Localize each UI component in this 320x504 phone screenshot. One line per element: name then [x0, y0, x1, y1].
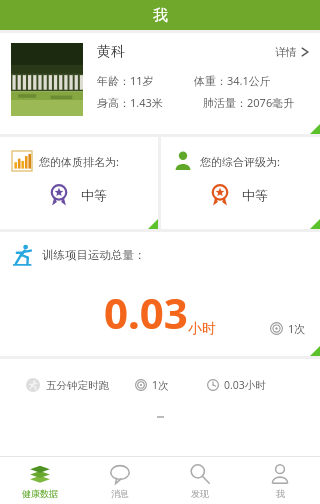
button[interactable]: 训练项目运动总量： [0, 232, 320, 356]
staticText: 发现 [191, 488, 209, 499]
button[interactable]: 健康数据 [0, 457, 80, 504]
staticText: 1次 [152, 378, 169, 392]
staticText: 1次 [288, 321, 306, 336]
button[interactable]: 黄科 [0, 33, 320, 134]
button[interactable]: 发现 [160, 457, 240, 504]
staticText: 肺活量：2076毫升 [203, 95, 295, 110]
button[interactable]: 您的体质排名为: [0, 137, 158, 229]
button[interactable]: 我 [240, 457, 320, 504]
button[interactable]: 详情 [275, 45, 309, 59]
staticText: 五分钟定时跑 [46, 379, 109, 392]
staticText: 身高：1.43米 [97, 95, 163, 110]
staticText: 中等 [81, 187, 107, 203]
staticText: 详情 [275, 45, 297, 59]
staticText: 0.03小时 [224, 378, 266, 392]
staticText: 健康数据 [22, 488, 58, 499]
staticText: 我 [153, 6, 168, 25]
button[interactable]: 您的综合评级为: [161, 137, 320, 229]
staticText: 消息 [111, 488, 129, 499]
staticText: 中等 [242, 187, 268, 203]
button[interactable]: 消息 [80, 457, 160, 504]
staticText: 年龄：11岁 [97, 73, 154, 88]
staticText: 0.03 [104, 284, 188, 341]
staticText: 您的综合评级为: [200, 154, 280, 169]
staticText: 黄科 [97, 43, 125, 61]
staticText: 体重：34.1公斤 [194, 73, 271, 88]
staticText: 我 [276, 488, 285, 499]
button[interactable]: 五分钟定时跑 [0, 359, 320, 456]
staticText: 小时 [188, 320, 216, 338]
staticText: 训练项目运动总量： [42, 248, 146, 262]
staticText: 您的体质排名为: [39, 154, 119, 169]
